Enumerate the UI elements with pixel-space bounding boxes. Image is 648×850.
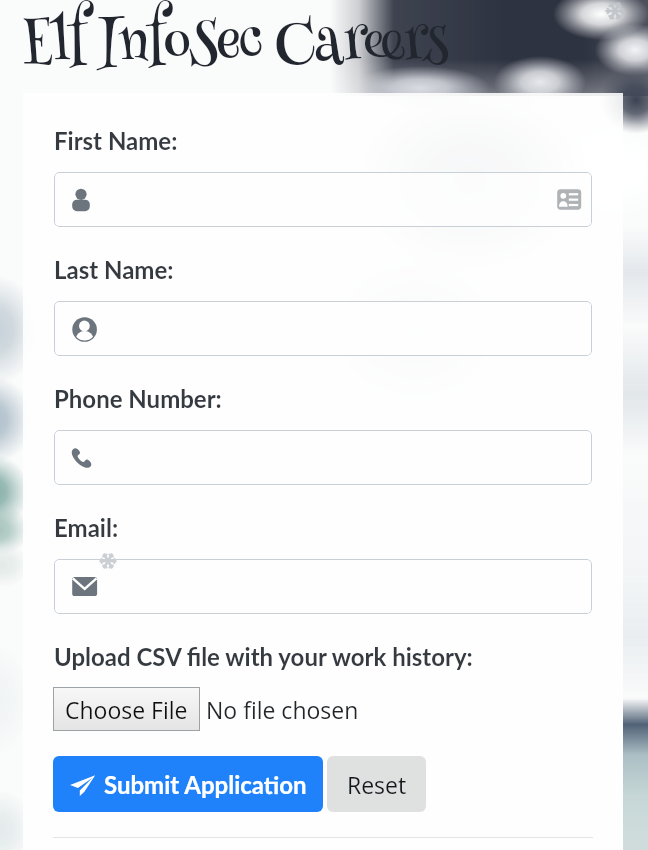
button[interactable]: Email	[54, 559, 592, 614]
button[interactable]: Phone number	[54, 430, 592, 485]
staticText: Submit Application	[104, 770, 307, 799]
button[interactable]: Last name	[54, 301, 592, 356]
staticText: Elf InfoSec Careers	[23, 1, 449, 93]
staticText: Last Name:	[54, 255, 174, 284]
button[interactable]: Submit Application	[53, 756, 323, 812]
staticText: No file chosen	[206, 694, 359, 725]
button[interactable]: Reset	[327, 756, 426, 812]
staticText: First Name:	[54, 126, 178, 155]
staticText: Upload CSV file with your work history:	[54, 642, 473, 671]
staticText: Email:	[54, 513, 119, 542]
button[interactable]: First name	[54, 172, 592, 227]
staticText: Phone Number:	[54, 384, 222, 413]
staticText: Choose File	[65, 694, 188, 725]
staticText: Reset	[347, 769, 407, 800]
button[interactable]: Choose File	[53, 687, 200, 731]
